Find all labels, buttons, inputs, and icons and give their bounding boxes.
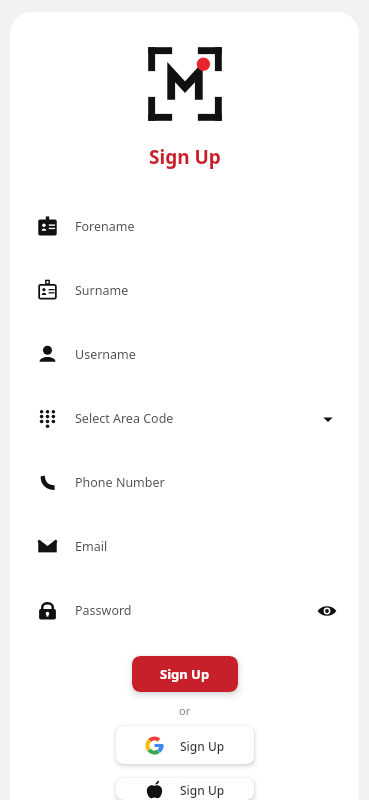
button[interactable]: Email	[10, 514, 359, 578]
other: App logo	[139, 38, 231, 130]
button[interactable]: Sign up with Google	[116, 726, 254, 764]
staticText: Username	[75, 346, 136, 363]
button[interactable]: Show password	[317, 601, 337, 621]
button[interactable]: Surname	[10, 258, 359, 322]
button[interactable]: Open area code list	[319, 410, 337, 428]
button[interactable]: Forename	[10, 194, 359, 258]
staticText: Select Area Code	[75, 410, 174, 427]
button[interactable]: Sign up with Apple	[116, 778, 254, 800]
staticText: Sign Up	[149, 144, 221, 170]
staticText: or	[179, 703, 191, 718]
button[interactable]: Sign Up	[132, 656, 238, 692]
staticText: Password	[75, 602, 132, 619]
staticText: Email	[75, 538, 108, 555]
button[interactable]: Select Area Code	[10, 386, 359, 450]
staticText: Sign Up	[180, 782, 225, 798]
staticText: Sign Up	[180, 738, 225, 754]
staticText: Phone Number	[75, 474, 165, 491]
button[interactable]: Password	[10, 578, 359, 642]
button[interactable]: Phone Number	[10, 450, 359, 514]
button[interactable]: Username	[10, 322, 359, 386]
staticText: Forename	[75, 218, 135, 235]
staticText: Surname	[75, 282, 129, 299]
staticText: Sign Up	[160, 665, 210, 683]
